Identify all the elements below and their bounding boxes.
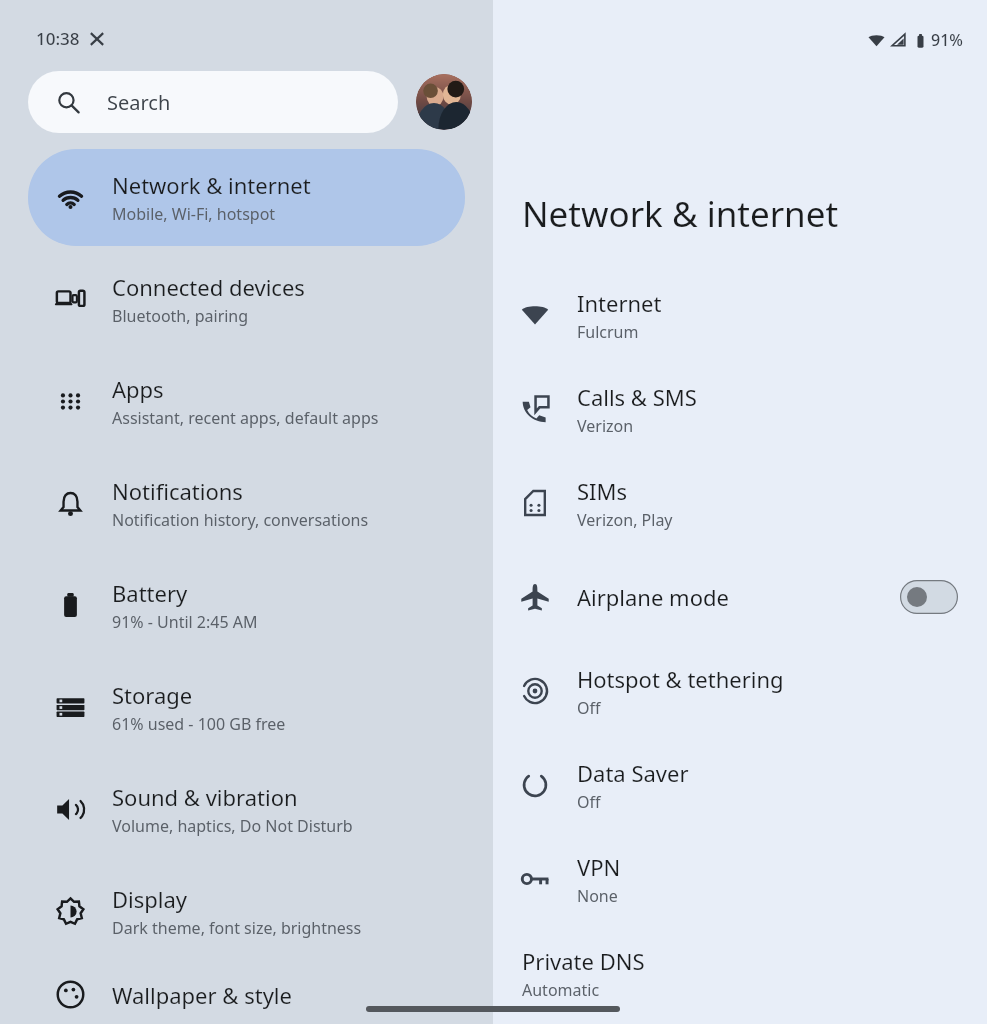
staticText: Off [577,697,601,719]
staticText: Calls & SMS [577,382,697,412]
button[interactable]: Storage [28,659,465,756]
button[interactable]: Data Saver [493,738,987,832]
staticText: Storage [112,680,193,710]
staticText: Battery [112,578,188,608]
button[interactable]: Private DNS [493,926,987,1020]
staticText: Notifications [112,476,243,506]
button[interactable]: Apps [28,353,465,450]
staticText: Off [577,791,601,813]
button[interactable]: Search [28,71,398,133]
staticText: Automatic [522,979,600,1001]
staticText: 10:38 [36,27,80,50]
button[interactable]: Wallpaper & style [28,965,465,1024]
staticText: Mobile, Wi-Fi, hotspot [112,203,276,225]
staticText: 91% - Until 2:45 AM [112,611,258,633]
staticText: Verizon [577,415,634,437]
staticText: Data Saver [577,758,689,788]
button[interactable]: Network & internet [28,149,465,246]
staticText: VPN [577,852,621,882]
staticText: Assistant, recent apps, default apps [112,407,379,429]
staticText: None [577,885,618,907]
button[interactable]: Connected devices [28,251,465,348]
staticText: Display [112,884,188,914]
staticText: Notification history, conversations [112,509,369,531]
staticText: Sound & vibration [112,782,298,812]
button[interactable]: Hotspot & tethering [493,644,987,738]
staticText: Connected devices [112,272,305,302]
staticText: 91% [931,29,963,51]
staticText: Fulcrum [577,321,639,343]
button[interactable]: Calls & SMS [493,362,987,456]
staticText: Hotspot & tethering [577,664,784,694]
staticText: 61% used - 100 GB free [112,713,286,735]
staticText: Search [107,89,171,116]
button[interactable]: Internet [493,268,987,362]
button[interactable]: SIMs [493,456,987,550]
button[interactable]: Notifications [28,455,465,552]
staticText: Volume, haptics, Do Not Disturb [112,815,353,837]
staticText: Network & internet [522,190,839,238]
staticText: Airplane mode [577,582,729,612]
button[interactable]: Airplane mode toggle [900,580,958,614]
staticText: Private DNS [522,946,645,976]
button[interactable]: Display [28,863,465,960]
staticText: Verizon, Play [577,509,673,531]
button[interactable]: VPN [493,832,987,926]
staticText: Wallpaper & style [112,980,292,1010]
staticText: Network & internet [112,170,311,200]
staticText: Internet [577,288,662,318]
staticText: Apps [112,374,164,404]
button[interactable]: Account [416,74,472,130]
staticText: Bluetooth, pairing [112,305,249,327]
button[interactable]: Battery [28,557,465,654]
staticText: Dark theme, font size, brightness [112,917,362,939]
staticText: SIMs [577,476,628,506]
button[interactable]: Sound & vibration [28,761,465,858]
button[interactable]: Airplane mode [493,550,987,644]
